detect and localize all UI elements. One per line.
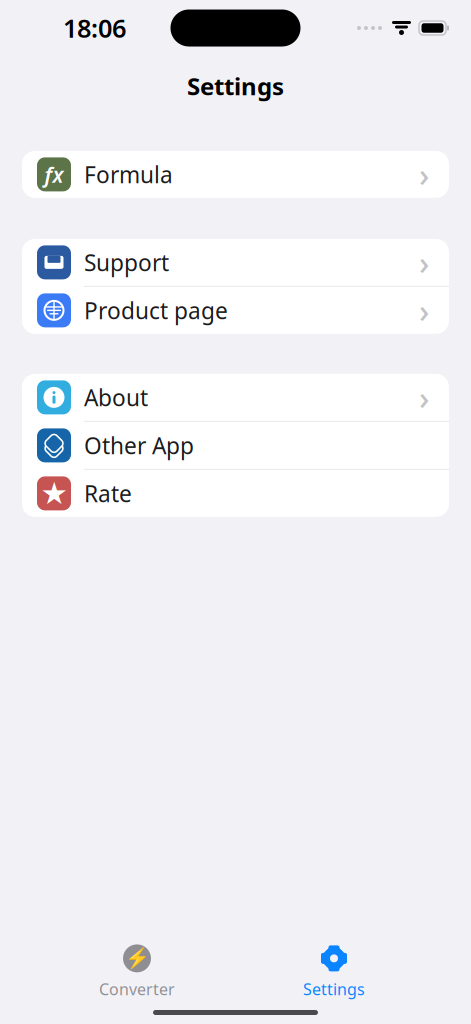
button[interactable]: Settings — [274, 946, 394, 998]
button[interactable]: Other App — [22, 422, 449, 469]
staticText: Support — [84, 247, 169, 277]
staticText: fx — [44, 160, 63, 188]
staticText: Converter — [99, 978, 175, 1000]
staticText: 18:06 — [63, 11, 126, 45]
button[interactable]: ⚡ — [77, 946, 197, 998]
staticText: About — [84, 382, 148, 412]
staticText: › — [419, 289, 429, 332]
staticText: Product page — [84, 295, 228, 325]
button[interactable]: About — [22, 374, 449, 421]
staticText: Formula — [84, 159, 173, 189]
button[interactable]: fx — [22, 151, 449, 198]
button[interactable]: Support — [22, 239, 449, 286]
button[interactable]: ★ — [22, 470, 449, 517]
staticText: › — [419, 241, 429, 284]
staticText: ⚡ — [124, 947, 149, 970]
staticText: › — [419, 153, 429, 196]
staticText: Settings — [187, 70, 284, 102]
staticText: Rate — [84, 478, 132, 508]
staticText: Settings — [303, 978, 365, 1000]
button[interactable]: Product page — [22, 287, 449, 334]
staticText: › — [419, 376, 429, 419]
staticText: ★ — [40, 476, 67, 511]
staticText: Other App — [84, 430, 194, 460]
